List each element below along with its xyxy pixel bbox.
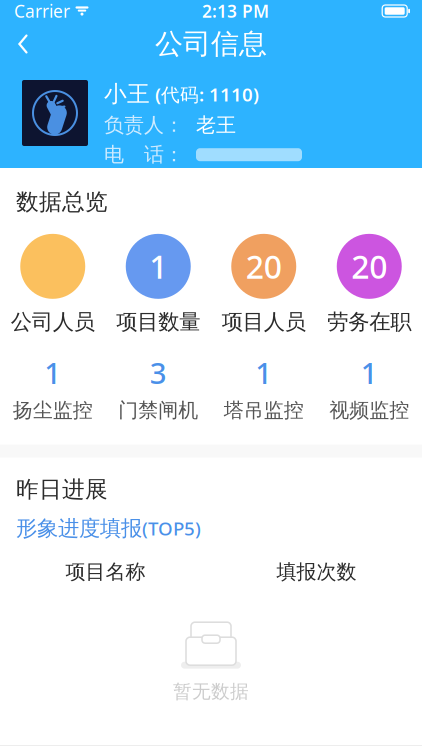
staticText: 1 <box>44 353 61 392</box>
staticText: 老王 <box>196 113 236 137</box>
staticText: 昨日进展 <box>16 476 108 503</box>
staticText: 2:13 PM <box>202 0 269 22</box>
staticText: (TOP5) <box>142 516 201 541</box>
button[interactable]: 20 <box>211 234 316 335</box>
staticText: 1 <box>149 245 167 288</box>
staticText: 项目数量 <box>116 309 200 335</box>
button[interactable]: 返回 <box>0 23 46 65</box>
staticText: 3 <box>150 353 167 392</box>
button[interactable]: 20 <box>316 234 422 335</box>
staticText: 项目人员 <box>222 309 306 335</box>
staticText: 1 <box>255 353 272 392</box>
button[interactable]: 1 <box>105 234 211 335</box>
staticText: 暂无数据 <box>173 680 249 703</box>
staticText: 公司人员 <box>11 309 95 335</box>
staticText: 塔吊监控 <box>224 398 304 423</box>
staticText: 20 <box>246 245 282 288</box>
button[interactable]: 形象进度填报 <box>0 503 422 542</box>
staticText: 形象进度填报 <box>16 515 142 542</box>
staticText: 电 话： <box>104 142 184 167</box>
button[interactable]: 1 <box>0 353 105 422</box>
staticText: 数据总览 <box>16 188 108 216</box>
staticText: 20 <box>351 245 387 288</box>
staticText: 填报次数 <box>276 560 356 584</box>
staticText: 小王 <box>104 80 150 108</box>
staticText: 负责人： <box>104 113 184 137</box>
button[interactable]: 3 <box>105 353 211 422</box>
staticText: 1 <box>361 353 378 392</box>
staticText: Carrier <box>14 0 70 22</box>
button[interactable]: 公司人员 <box>0 234 105 335</box>
staticText: 劳务在职 <box>327 309 411 335</box>
staticText: 门禁闸机 <box>118 398 198 423</box>
button[interactable]: 1 <box>211 353 316 422</box>
staticText: 视频监控 <box>329 398 409 423</box>
staticText: 公司信息 <box>155 27 267 61</box>
button[interactable]: 1 <box>316 353 422 422</box>
staticText: (代码: 1110) <box>155 82 259 107</box>
staticText: 扬尘监控 <box>13 398 93 423</box>
staticText: 项目名称 <box>65 560 145 584</box>
